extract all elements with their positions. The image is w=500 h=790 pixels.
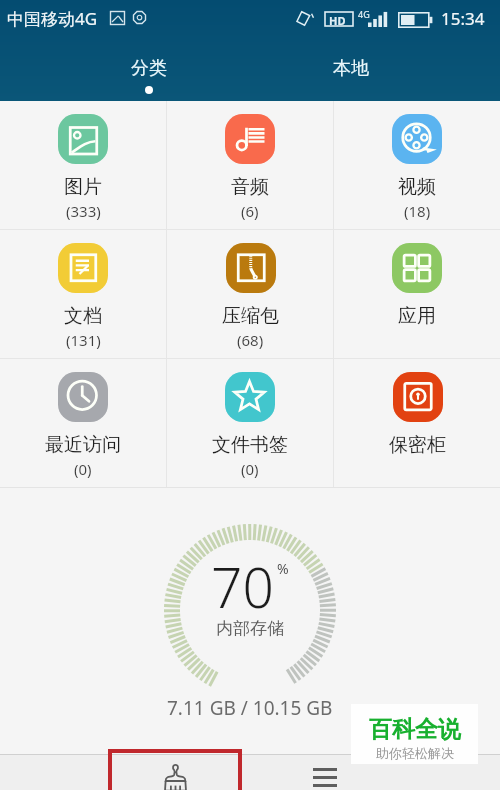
staticText: 助你轻松解决 bbox=[376, 745, 454, 761]
button[interactable]: 最近访问 bbox=[0, 359, 166, 479]
button[interactable]: 文档 bbox=[0, 230, 166, 350]
staticText: (131) bbox=[66, 330, 101, 350]
staticText: 保密柜 bbox=[389, 433, 446, 457]
staticText: 最近访问 bbox=[45, 433, 121, 457]
staticText: (68) bbox=[237, 330, 264, 350]
staticText: (18) bbox=[404, 201, 431, 221]
staticText: 4G bbox=[358, 8, 370, 20]
staticText: HD bbox=[329, 13, 346, 28]
staticText: 压缩包 bbox=[222, 304, 279, 328]
staticText: (0) bbox=[74, 459, 92, 479]
staticText: 图片 bbox=[64, 175, 102, 199]
button[interactable]: 保密柜 bbox=[334, 359, 500, 457]
staticText: (6) bbox=[241, 201, 259, 221]
staticText: 文档 bbox=[64, 304, 102, 328]
staticText: 本地 bbox=[333, 57, 369, 80]
staticText: 音频 bbox=[231, 175, 269, 199]
staticText: 内部存储 bbox=[216, 618, 284, 639]
staticText: (0) bbox=[241, 459, 259, 479]
staticText: 百科全说 bbox=[369, 715, 461, 744]
staticText: 15:34 bbox=[441, 7, 485, 30]
staticText: % bbox=[277, 559, 289, 578]
button[interactable]: Clean bbox=[110, 755, 240, 790]
staticText: 7.11 GB / 10.15 GB bbox=[167, 695, 333, 721]
button[interactable]: 图片 bbox=[0, 101, 166, 221]
button[interactable]: Menu bbox=[290, 755, 360, 790]
staticText: 中国移动4G bbox=[7, 7, 98, 30]
staticText: 视频 bbox=[398, 175, 436, 199]
staticText: 70 bbox=[211, 549, 274, 624]
button[interactable]: 应用 bbox=[334, 230, 500, 328]
button[interactable]: 视频 bbox=[334, 101, 500, 221]
button[interactable]: 本地 bbox=[250, 44, 452, 86]
button[interactable]: 音频 bbox=[167, 101, 333, 221]
staticText: (333) bbox=[66, 201, 101, 221]
button[interactable]: 分类 bbox=[48, 44, 250, 94]
staticText: 分类 bbox=[131, 57, 167, 80]
staticText: 应用 bbox=[398, 304, 436, 328]
button[interactable]: 文件书签 bbox=[167, 359, 333, 479]
button[interactable]: 压缩包 bbox=[167, 230, 333, 350]
staticText: 文件书签 bbox=[212, 433, 288, 457]
